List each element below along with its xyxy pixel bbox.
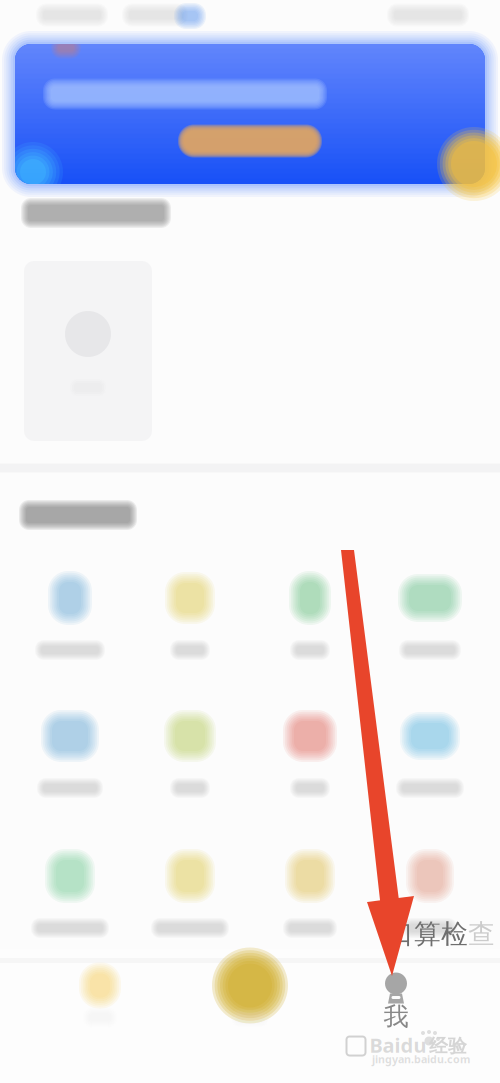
button[interactable]: 我 [341, 960, 451, 1034]
staticText: Baidu [369, 1032, 426, 1058]
staticText: 经验 [429, 1034, 467, 1057]
button[interactable]: 首页 [45, 961, 155, 1031]
button[interactable]: 工具入口 [371, 850, 489, 954]
button[interactable]: 立即领取 [178, 124, 322, 157]
button[interactable]: 工具入口 [371, 572, 489, 676]
button[interactable]: 工具入口 [11, 850, 129, 954]
button[interactable]: 课程 [24, 261, 152, 441]
button[interactable]: 工具入口 [371, 710, 489, 814]
button[interactable]: 工具入口 [131, 572, 249, 676]
button[interactable]: 工具入口 [251, 572, 369, 676]
button[interactable]: 工具入口 [11, 572, 129, 676]
staticText: jingyan.baidu.com [372, 1052, 470, 1066]
staticText: 查 [468, 918, 495, 950]
button[interactable]: 工具入口 [131, 850, 249, 954]
button[interactable]: 工具入口 [251, 850, 369, 954]
staticText: 我 [383, 1001, 408, 1032]
button[interactable]: 工具入口 [251, 710, 369, 814]
button[interactable]: 口算 [190, 955, 310, 1031]
button[interactable]: 工具入口 [131, 710, 249, 814]
staticText: 口算检 [387, 918, 468, 950]
button[interactable]: 工具入口 [11, 710, 129, 814]
